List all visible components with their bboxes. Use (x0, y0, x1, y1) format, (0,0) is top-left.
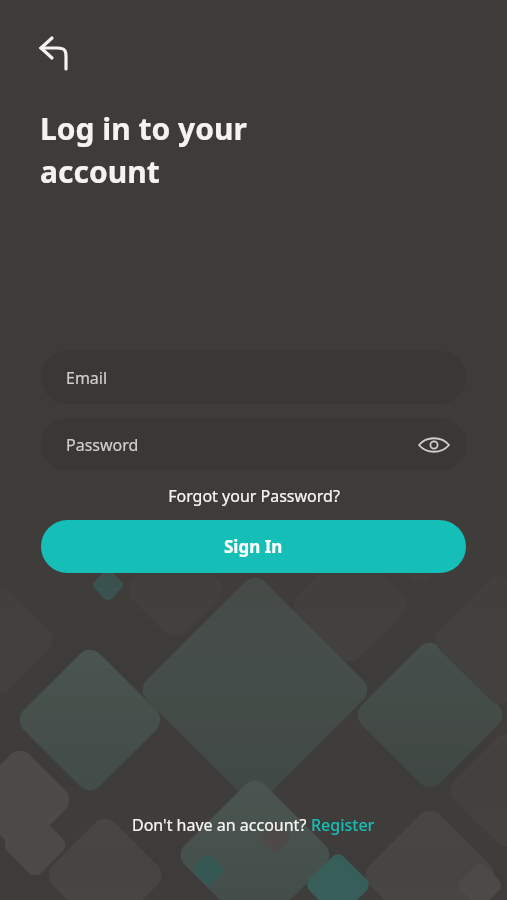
button[interactable]: Password (41, 418, 466, 471)
staticText: Forgot your Password? (168, 485, 340, 507)
staticText: Password (66, 434, 139, 456)
staticText: Email (66, 367, 108, 389)
staticText: Sign In (224, 535, 283, 558)
button[interactable]: Show password (414, 425, 454, 465)
button[interactable]: Don't have an account? (126, 812, 381, 838)
staticText: Register (311, 814, 375, 836)
button[interactable]: Back (30, 27, 78, 75)
button[interactable]: Forgot your Password? (0, 483, 507, 509)
staticText: Log in to your account (40, 108, 247, 192)
staticText: Don't have an account? (132, 814, 311, 836)
button[interactable]: Email (41, 351, 466, 404)
button[interactable]: Sign In (41, 520, 466, 573)
